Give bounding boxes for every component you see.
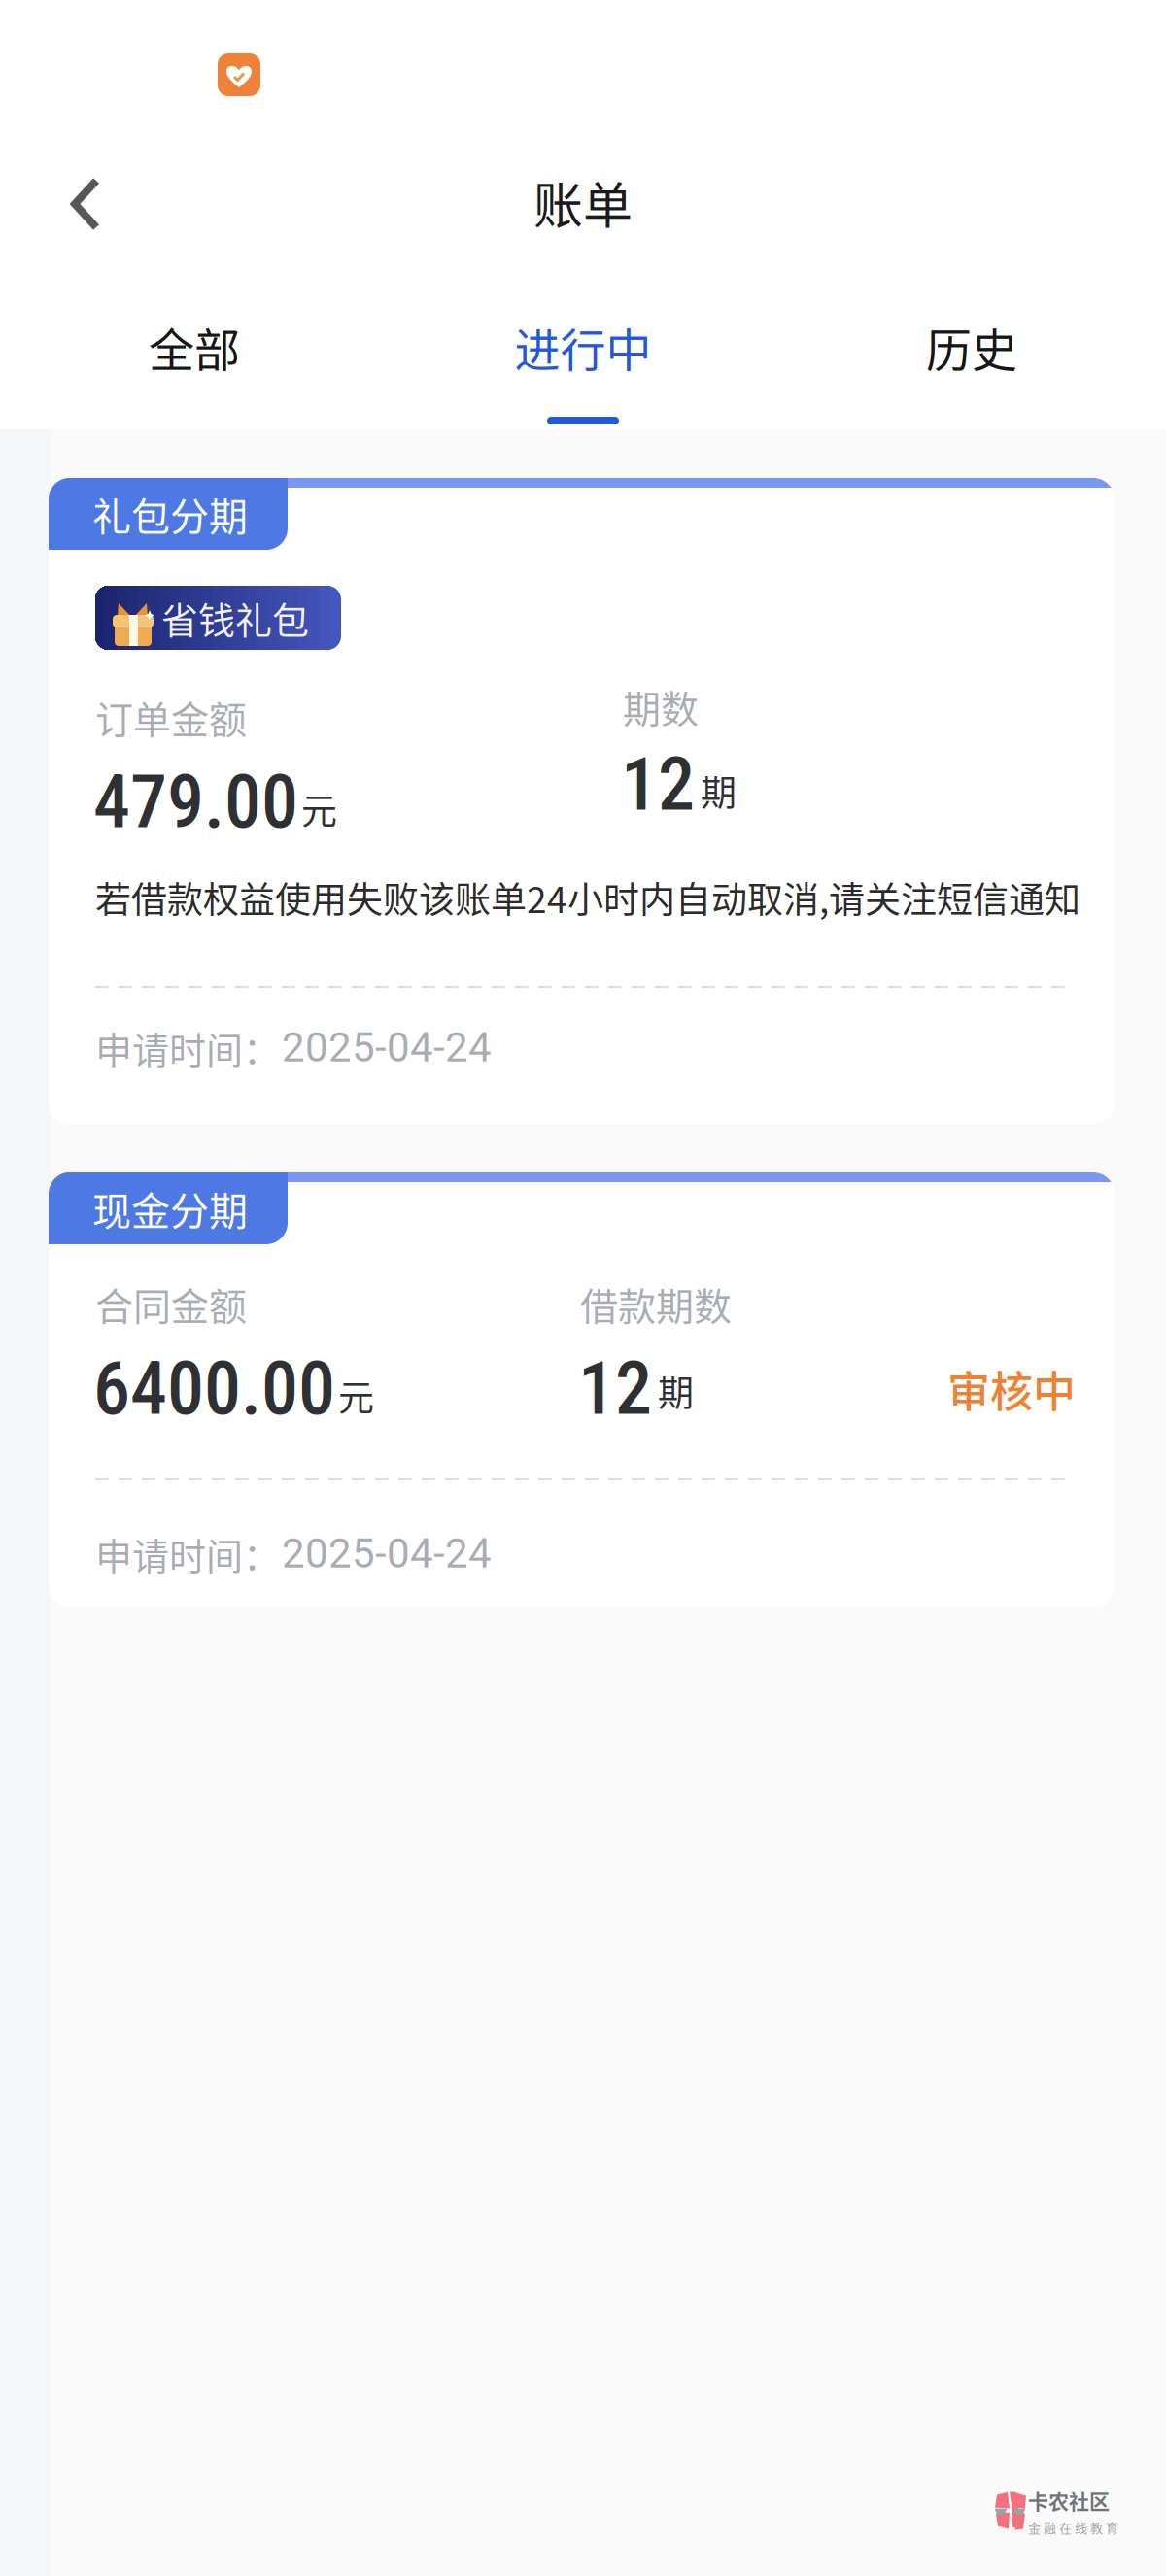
staticText: 申请时间： [95,1527,280,1580]
staticText: 账单 [533,166,633,238]
staticText: 6400.00 [93,1345,335,1432]
button[interactable]: 返回 [27,153,144,254]
staticText: 元 [338,1370,374,1422]
staticText: 历史 [926,314,1017,380]
staticText: 审核中 [947,1358,1076,1420]
staticText: 金融在线教育 [1028,2518,1118,2536]
staticText: 期 [701,764,737,817]
staticText: 期 [658,1365,694,1417]
button[interactable]: 进行中 [389,288,777,414]
staticText: 期数 [623,679,699,734]
staticText: 礼包分期 [92,486,248,542]
staticText: 省钱礼包 [161,591,309,644]
staticText: 进行中 [514,314,652,380]
button[interactable]: 历史 [777,284,1166,410]
staticText: 479.00 [93,759,298,845]
staticText: 若借款权益使用失败该账单24小时内自动取消,请关注短信通知 [95,871,1080,923]
button[interactable]: 全部 [0,284,389,410]
staticText: 卡农社区 [1028,2486,1110,2515]
staticText: 订单金额 [95,690,247,745]
staticText: 借款期数 [580,1276,732,1331]
staticText: 2025-04-24 [282,1530,492,1578]
staticText: 元 [301,783,337,835]
staticText: 2025-04-24 [282,1024,492,1071]
staticText: 申请时间： [95,1021,280,1074]
staticText: 现金分期 [92,1180,248,1236]
staticText: 全部 [149,314,240,380]
staticText: 合同金额 [95,1276,247,1331]
staticText: 12 [621,741,695,828]
staticText: 12 [578,1345,652,1432]
